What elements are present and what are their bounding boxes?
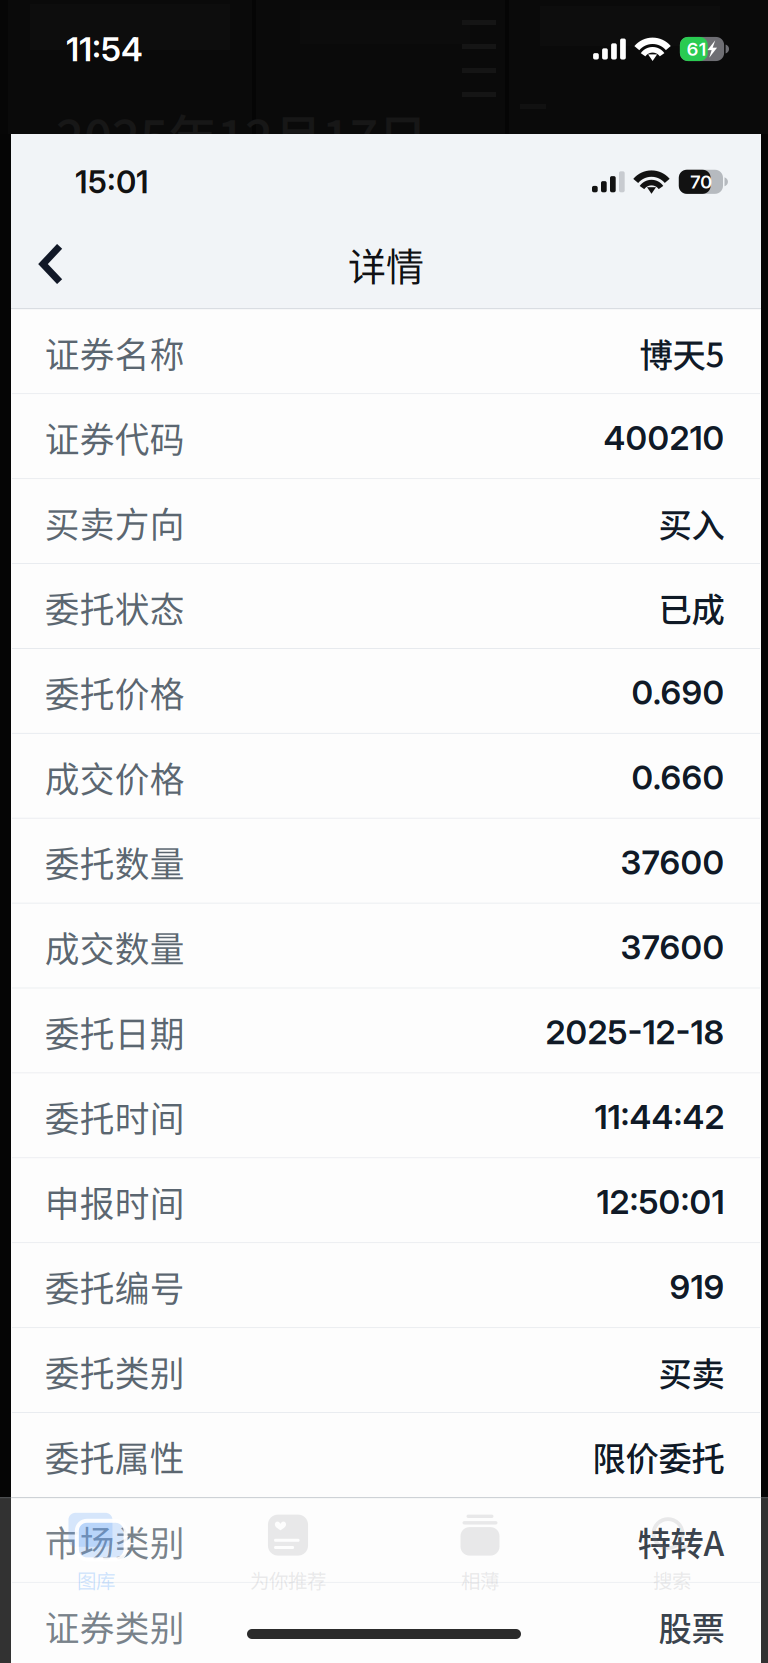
staticText: 919 xyxy=(669,1267,724,1307)
staticText: 搜索 xyxy=(653,1566,691,1594)
staticText: 证券名称 xyxy=(45,328,185,378)
button[interactable]: 委托日期 xyxy=(11,989,761,1072)
button[interactable]: 委托状态 xyxy=(11,564,761,648)
button[interactable]: 委托编号 xyxy=(11,1243,761,1327)
staticText: 成交价格 xyxy=(45,752,185,802)
button[interactable]: 证券代码 xyxy=(11,394,761,478)
staticText: 详情 xyxy=(348,236,424,291)
button[interactable]: 返回 xyxy=(11,222,83,306)
staticText: 委托类别 xyxy=(45,1347,185,1397)
button[interactable]: 成交数量 xyxy=(11,904,761,988)
staticText: 37600 xyxy=(620,842,724,882)
staticText: 70 xyxy=(690,170,712,193)
staticText: 委托属性 xyxy=(45,1431,185,1482)
button[interactable]: 申报时间 xyxy=(11,1158,761,1242)
staticText: 特转A xyxy=(637,1517,724,1566)
staticText: 2025-12-18 xyxy=(545,1012,724,1052)
staticText: 委托编号 xyxy=(45,1262,185,1312)
button[interactable]: 为你推荐 xyxy=(192,1497,384,1597)
staticText: 成交数量 xyxy=(45,922,185,972)
button[interactable]: 市场类别 xyxy=(11,1498,761,1582)
staticText: 12:50:01 xyxy=(596,1182,724,1222)
button[interactable]: 证券名称 xyxy=(11,309,761,393)
staticText: 11:44:42 xyxy=(594,1097,724,1137)
button[interactable]: 图库 xyxy=(0,1497,192,1597)
staticText: 委托价格 xyxy=(45,667,185,718)
staticText: 11:54 xyxy=(66,29,143,69)
staticText: 证券类别 xyxy=(45,1601,185,1651)
staticText: 买卖 xyxy=(658,1347,724,1396)
staticText: 限价委托 xyxy=(592,1432,724,1481)
staticText: 400210 xyxy=(603,418,724,458)
staticText: 为你推荐 xyxy=(250,1566,326,1594)
button[interactable]: 相薄 xyxy=(384,1497,576,1597)
button[interactable]: 委托类别 xyxy=(11,1328,761,1412)
button[interactable]: 委托时间 xyxy=(11,1073,761,1157)
staticText: 37600 xyxy=(620,927,724,967)
staticText: 相薄 xyxy=(461,1566,499,1594)
button[interactable]: 证券类别 xyxy=(11,1583,761,1663)
staticText: 已成 xyxy=(658,583,724,632)
staticText: 委托时间 xyxy=(45,1092,185,1142)
button[interactable]: 委托属性 xyxy=(11,1413,761,1497)
staticText: 61 xyxy=(686,38,706,60)
staticText: 证券代码 xyxy=(45,413,185,463)
staticText: 股票 xyxy=(658,1602,724,1650)
staticText: 2025年12月17日 xyxy=(56,99,427,170)
staticText: 0.690 xyxy=(631,672,724,713)
staticText: 15:01 xyxy=(75,163,149,201)
staticText: 委托状态 xyxy=(45,582,185,633)
staticText: 市场类别 xyxy=(45,1516,185,1567)
button[interactable]: 成交价格 xyxy=(11,734,761,818)
button[interactable]: 委托数量 xyxy=(11,819,761,903)
staticText: 博天5 xyxy=(639,329,724,377)
button[interactable]: 搜索 xyxy=(576,1497,768,1597)
staticText: 委托数量 xyxy=(45,837,185,887)
staticText: 委托日期 xyxy=(45,1007,185,1057)
staticText: 买入 xyxy=(658,498,724,547)
staticText: 0.660 xyxy=(631,757,724,797)
staticText: 买卖方向 xyxy=(45,498,185,548)
staticText: 申报时间 xyxy=(45,1177,185,1227)
staticText: 图库 xyxy=(77,1566,115,1594)
button[interactable]: 买卖方向 xyxy=(11,479,761,563)
button[interactable]: 委托价格 xyxy=(11,649,761,733)
